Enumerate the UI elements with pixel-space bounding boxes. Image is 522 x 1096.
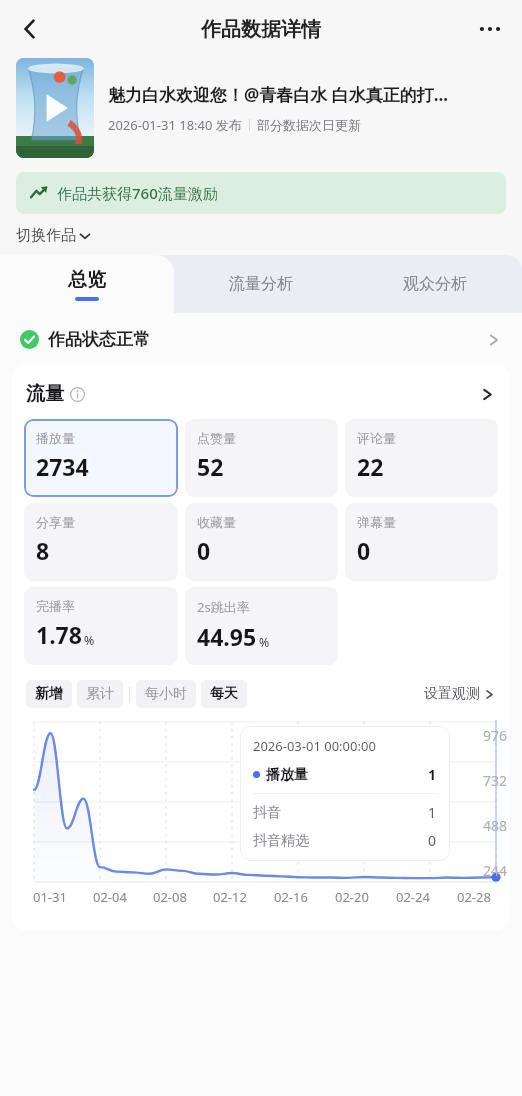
- button[interactable]: 设置观测: [424, 685, 496, 703]
- button[interactable]: 每天: [201, 680, 247, 708]
- button[interactable]: 评论量: [345, 419, 498, 497]
- staticText: 评论量: [357, 430, 396, 446]
- staticText: 分享量: [36, 514, 75, 530]
- staticText: 02-16: [274, 888, 308, 906]
- button[interactable]: 分享量: [24, 503, 178, 581]
- button[interactable]: 流量分析: [174, 255, 348, 313]
- button[interactable]: 弹幕量: [345, 503, 498, 581]
- button[interactable]: 完播率: [24, 587, 178, 665]
- staticText: 播放量: [36, 430, 75, 446]
- staticText: 设置观测: [424, 685, 480, 703]
- staticText: 01-31: [33, 888, 67, 906]
- staticText: 0: [357, 535, 371, 566]
- button[interactable]: 播放量: [24, 419, 178, 497]
- staticText: 732: [483, 771, 508, 790]
- staticText: 流量: [26, 382, 64, 406]
- staticText: 0: [428, 831, 437, 850]
- staticText: 976: [483, 726, 508, 745]
- staticText: 播放量: [266, 766, 308, 784]
- staticText: 02-20: [335, 888, 369, 906]
- staticText: 22: [357, 451, 384, 482]
- staticText: 收藏量: [197, 514, 236, 530]
- staticText: 2734: [36, 451, 89, 482]
- staticText: 观众分析: [403, 274, 467, 294]
- staticText: 弹幕量: [357, 514, 396, 530]
- staticText: 新增: [35, 685, 63, 703]
- staticText: 魅力白水欢迎您！@青春白水 白水真正的打...: [108, 83, 449, 106]
- button[interactable]: 切换作品: [16, 226, 92, 245]
- button[interactable]: 观众分析: [348, 255, 522, 313]
- staticText: 总览: [68, 268, 106, 292]
- button[interactable]: Back: [8, 7, 52, 51]
- staticText: 0: [197, 535, 211, 566]
- staticText: 488: [483, 816, 508, 835]
- button[interactable]: More options: [468, 7, 512, 51]
- staticText: %: [84, 632, 95, 648]
- staticText: 02-28: [457, 888, 491, 906]
- button[interactable]: 作品状态正常: [20, 329, 502, 350]
- button[interactable]: 每小时: [136, 680, 196, 708]
- staticText: 作品数据详情: [201, 17, 321, 42]
- staticText: 44.95: [197, 621, 257, 652]
- staticText: 切换作品: [16, 226, 76, 245]
- staticText: 部分数据次日更新: [257, 117, 361, 133]
- staticText: 02-04: [93, 888, 127, 906]
- staticText: 流量分析: [229, 274, 293, 294]
- staticText: 每小时: [145, 685, 187, 703]
- button[interactable]: 总览: [0, 255, 174, 313]
- button[interactable]: 2s跳出率: [185, 587, 338, 665]
- staticText: 2026-03-01 00:00:00: [253, 737, 376, 755]
- staticText: 02-24: [396, 888, 430, 906]
- staticText: 作品共获得760流量激励: [57, 183, 218, 203]
- staticText: 02-08: [153, 888, 187, 906]
- staticText: 抖音: [253, 804, 281, 822]
- staticText: 8: [36, 535, 50, 566]
- button[interactable]: 累计: [77, 680, 123, 708]
- staticText: 累计: [86, 685, 114, 703]
- staticText: 1: [428, 765, 437, 784]
- staticText: %: [259, 634, 270, 650]
- button[interactable]: 作品共获得760流量激励: [16, 172, 506, 214]
- staticText: 每天: [210, 685, 238, 703]
- staticText: 抖音精选: [253, 832, 309, 850]
- staticText: 2026-01-31 18:40 发布: [108, 116, 242, 134]
- button[interactable]: 魅力白水欢迎您！@青春白水 白水真正的打...: [16, 58, 506, 158]
- button[interactable]: 收藏量: [185, 503, 338, 581]
- staticText: 作品状态正常: [48, 329, 150, 350]
- button[interactable]: 点赞量: [185, 419, 338, 497]
- staticText: 2s跳出率: [197, 598, 250, 616]
- staticText: 244: [483, 861, 508, 880]
- staticText: 02-12: [213, 888, 247, 906]
- button[interactable]: 流量: [12, 364, 510, 416]
- button[interactable]: 新增: [26, 680, 72, 708]
- staticText: 点赞量: [197, 430, 236, 446]
- staticText: 完播率: [36, 598, 75, 614]
- staticText: 1.78: [36, 619, 82, 650]
- staticText: 52: [197, 451, 224, 482]
- staticText: 1: [428, 803, 437, 822]
